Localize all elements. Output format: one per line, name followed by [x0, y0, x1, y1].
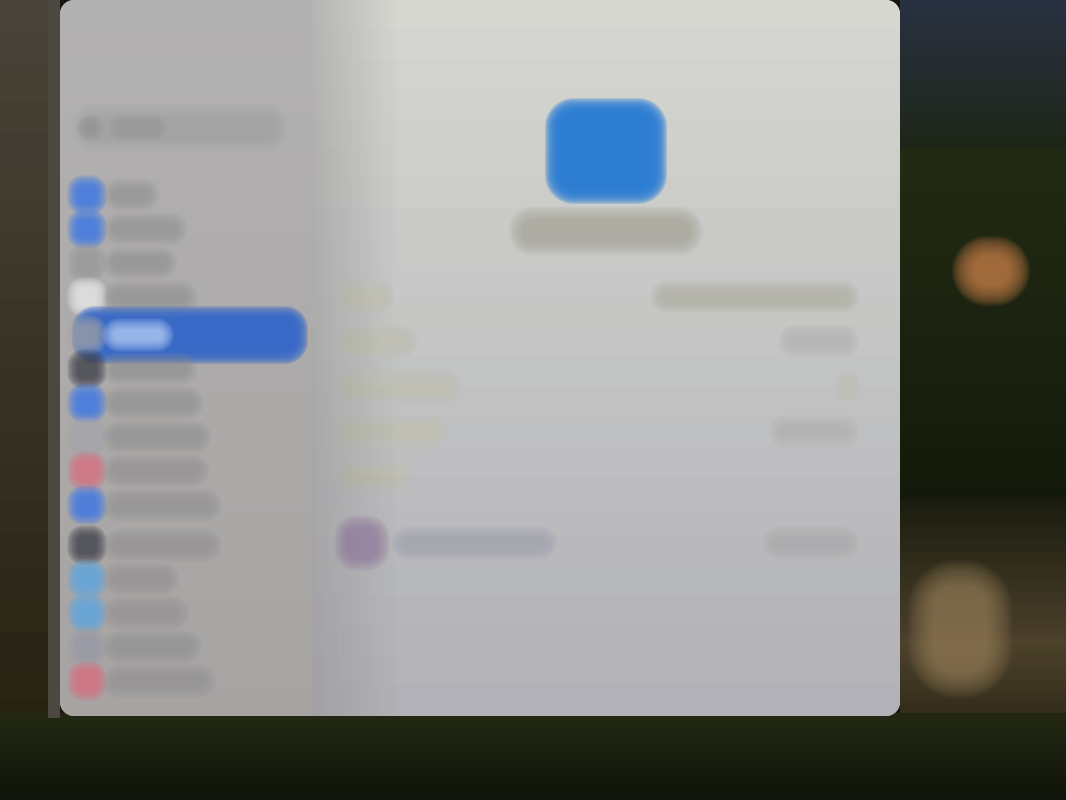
button[interactable]: Battery	[72, 280, 308, 314]
button[interactable]: Energy Saver	[72, 664, 308, 698]
button[interactable]: Desktop & Dock	[72, 528, 308, 562]
button[interactable]: Siri & Spotlight	[72, 454, 308, 488]
button[interactable]: Detail row	[334, 364, 860, 409]
button[interactable]: Bluetooth	[72, 212, 308, 246]
button[interactable]: Network	[72, 246, 308, 280]
button[interactable]: Appearance	[72, 352, 308, 386]
button[interactable]: Detail row	[334, 454, 860, 499]
button[interactable]: macOS version	[312, 515, 900, 571]
button[interactable]: Displays	[72, 562, 308, 596]
button[interactable]: Control Centre	[72, 420, 308, 454]
button[interactable]: Privacy & Security	[72, 488, 308, 522]
button[interactable]: Wi-Fi	[72, 178, 308, 212]
button[interactable]: General	[72, 318, 308, 352]
button[interactable]: Detail row	[334, 319, 860, 364]
button[interactable]: Wallpaper	[72, 596, 308, 630]
button[interactable]: Accessibility	[72, 386, 308, 420]
button[interactable]: Detail row	[334, 274, 860, 319]
button[interactable]: Detail row	[334, 409, 860, 454]
button[interactable]: Screen Saver	[72, 630, 308, 664]
